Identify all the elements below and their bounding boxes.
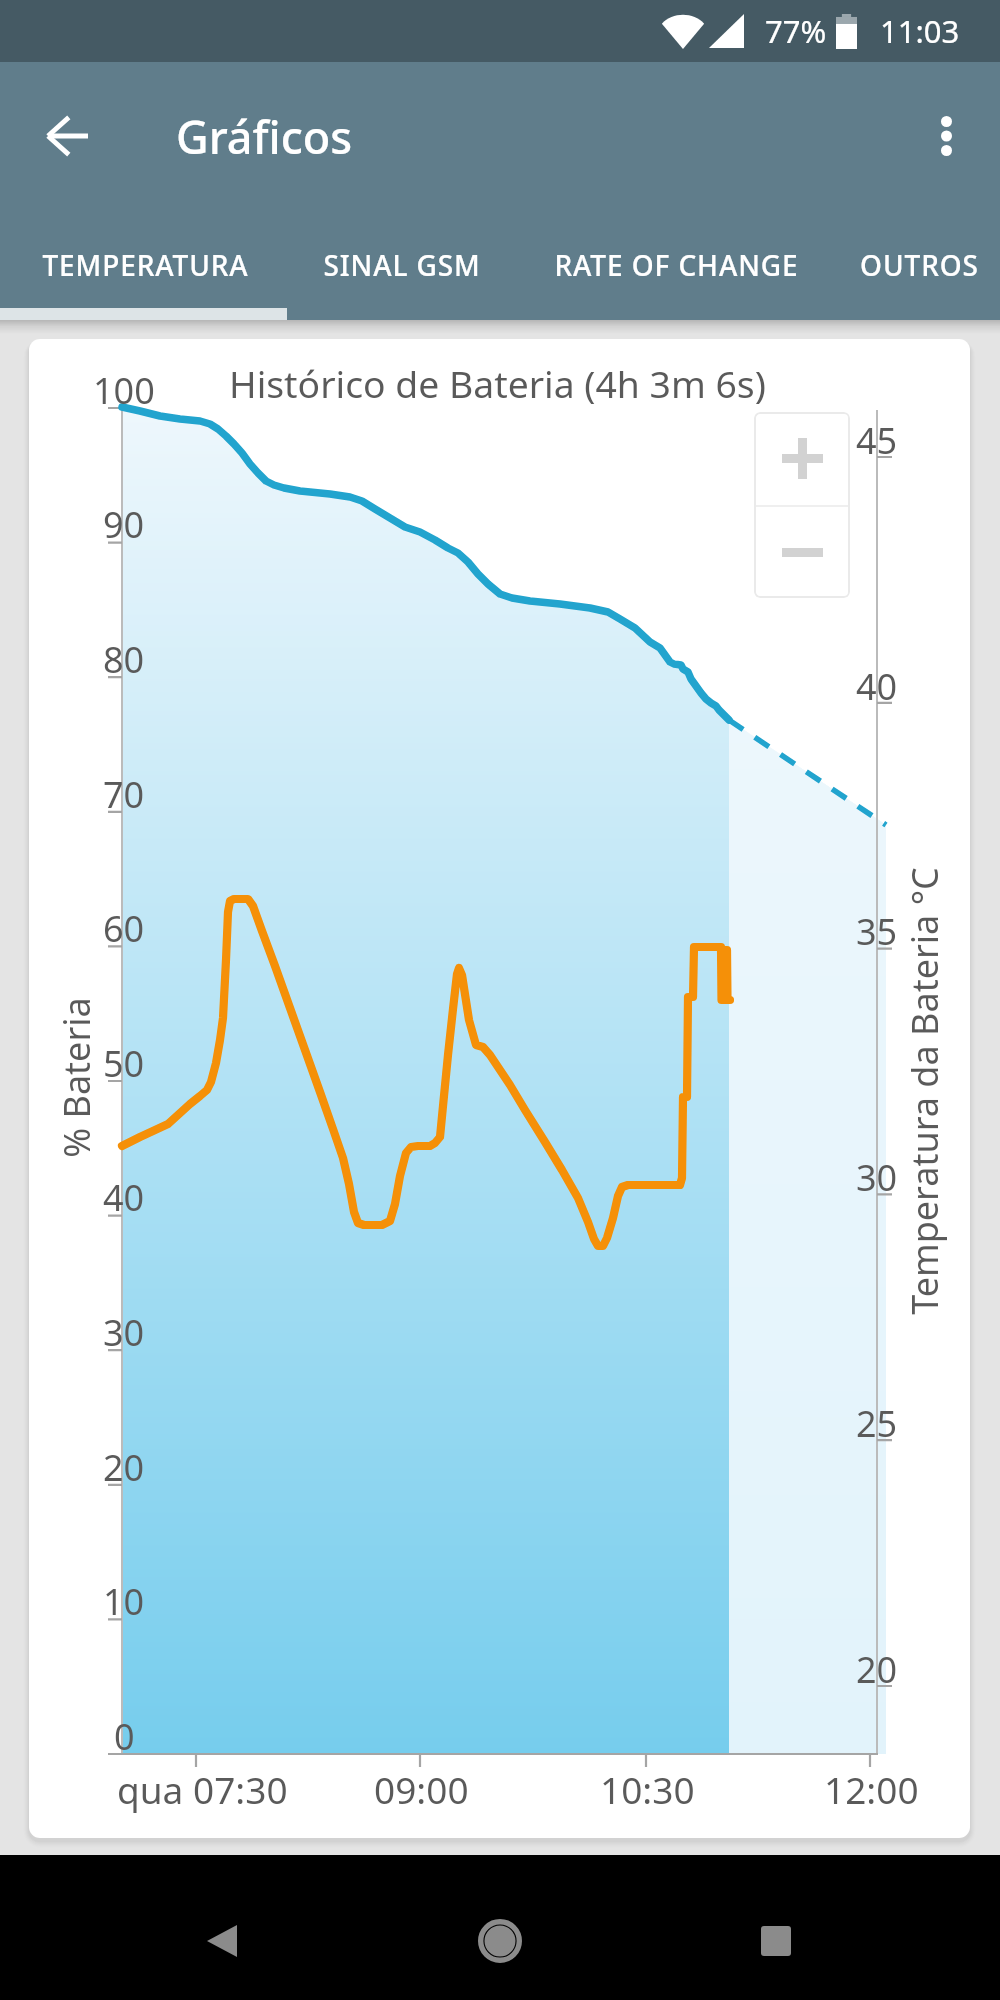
staticText: 12:00 (824, 1764, 919, 1814)
staticText: OUTROS (860, 246, 979, 284)
staticText: 20 (856, 1645, 898, 1694)
staticText: Histórico de Bateria (4h 3m 6s) (229, 358, 766, 408)
staticText: Temperatura da Bateria °C (900, 867, 949, 1315)
staticText: 10 (103, 1577, 145, 1626)
staticText: 60 (103, 904, 145, 953)
button[interactable]: Zoom in (754, 412, 850, 505)
staticText: 20 (103, 1443, 145, 1492)
staticText: 0 (114, 1712, 135, 1761)
staticText: SINAL GSM (323, 246, 481, 284)
button[interactable]: Back (162, 1881, 282, 2000)
staticText: qua 07:30 (117, 1764, 288, 1814)
staticText: 40 (856, 662, 898, 711)
button[interactable]: OUTROS (838, 210, 1000, 320)
staticText: 100 (93, 366, 155, 415)
button[interactable]: Zoom out (754, 507, 850, 598)
button[interactable]: More options (902, 92, 990, 180)
staticText: 50 (103, 1039, 145, 1088)
button[interactable]: Recent apps (716, 1881, 836, 2000)
button[interactable]: SINAL GSM (290, 210, 514, 320)
staticText: % Bateria (52, 997, 101, 1158)
staticText: 10:30 (600, 1764, 695, 1814)
staticText: 30 (103, 1308, 145, 1357)
staticText: 40 (103, 1173, 145, 1222)
staticText: 80 (103, 635, 145, 684)
staticText: 25 (856, 1399, 898, 1448)
staticText: 11:03 (880, 10, 960, 52)
staticText: RATE OF CHANGE (554, 246, 799, 284)
button[interactable]: RATE OF CHANGE (514, 210, 838, 320)
staticText: 30 (856, 1153, 898, 1202)
staticText: Gráficos (176, 106, 353, 167)
button[interactable]: TEMPERATURA (0, 210, 290, 320)
staticText: 77% (765, 10, 827, 52)
staticText: 70 (103, 770, 145, 819)
button[interactable]: Back (24, 92, 112, 180)
staticText: 09:00 (374, 1764, 469, 1814)
button[interactable]: Home (440, 1881, 560, 2000)
staticText: 90 (103, 500, 145, 549)
staticText: 35 (856, 907, 898, 956)
staticText: TEMPERATURA (42, 246, 249, 284)
staticText: 45 (856, 416, 898, 465)
